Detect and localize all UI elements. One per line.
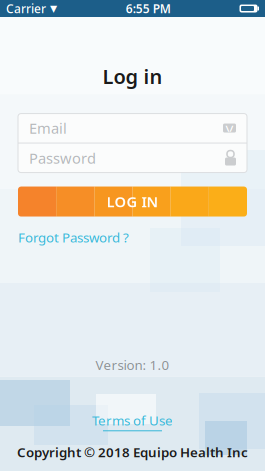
staticText: 6:55 PM <box>126 0 171 16</box>
staticText: Terms of Use <box>92 412 173 429</box>
staticText: \/ <box>225 122 233 134</box>
staticText: Password <box>29 148 96 168</box>
staticText: LOG IN <box>106 192 158 211</box>
staticText: Email <box>29 118 67 138</box>
button[interactable]: Forgot Password ? <box>18 225 129 250</box>
staticText: Carrier <box>6 0 46 16</box>
staticText: Forgot Password ? <box>18 229 129 246</box>
staticText: Log in <box>102 63 162 90</box>
button[interactable]: LOG IN <box>18 187 247 217</box>
button[interactable]: Terms of Use <box>86 410 179 433</box>
staticText: Version: 1.0 <box>95 356 169 374</box>
staticText: ▼ <box>50 3 57 14</box>
staticText: Copyright © 2018 Equipo Health Inc <box>17 443 248 461</box>
